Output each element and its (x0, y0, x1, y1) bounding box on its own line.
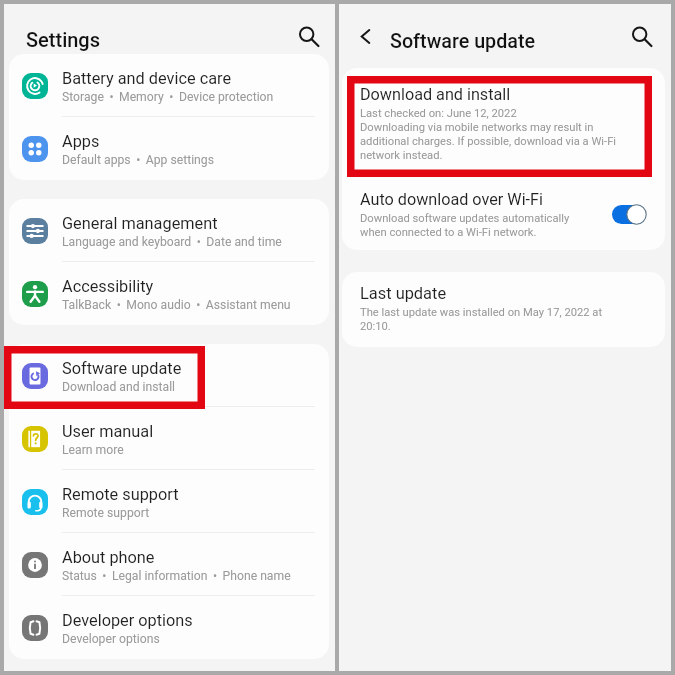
staticText: Language and keyboard • Date and time (62, 233, 282, 250)
button[interactable]: Last update (342, 272, 665, 347)
staticText: About phone (62, 549, 155, 567)
button[interactable]: Software update (9, 344, 329, 407)
staticText: Remote support (62, 486, 179, 504)
staticText: Accessibility (62, 278, 154, 296)
button[interactable]: Auto download over Wi-Fi (612, 205, 645, 224)
staticText: Software update (62, 360, 182, 378)
button[interactable]: Developer options (9, 596, 329, 659)
staticText: Apps (62, 133, 100, 151)
button[interactable]: About phone (9, 533, 329, 596)
staticText: The last update was installed on May 17,… (360, 305, 603, 333)
staticText: Storage • Memory • Device protection (62, 88, 274, 105)
staticText: TalkBack • Mono audio • Assistant menu (62, 296, 291, 313)
button[interactable]: Download and install (342, 68, 665, 168)
staticText: Developer options (62, 630, 160, 647)
staticText: Settings (26, 28, 101, 52)
button[interactable]: Accessibility (9, 262, 329, 325)
staticText: Auto download over Wi-Fi (360, 190, 543, 209)
staticText: Last checked on: June 12, 2022 (360, 106, 517, 120)
button[interactable]: User manual (9, 407, 329, 470)
button[interactable]: Search (293, 21, 323, 51)
staticText: Software update (390, 29, 536, 53)
staticText: Download and install (62, 378, 176, 395)
staticText: Default apps • App settings (62, 151, 214, 168)
staticText: Developer options (62, 612, 193, 630)
staticText: Downloading via mobile networks may resu… (360, 120, 617, 162)
staticText: Download and install (360, 85, 511, 104)
button[interactable]: Apps (9, 117, 329, 180)
button[interactable]: Remote support (9, 470, 329, 533)
staticText: Last update (360, 284, 447, 303)
staticText: Battery and device care (62, 70, 232, 88)
button[interactable]: Auto download over Wi-Fi (342, 168, 665, 250)
button[interactable]: Battery and device care (9, 54, 329, 117)
staticText: General management (62, 215, 218, 233)
staticText: User manual (62, 423, 154, 441)
staticText: Status • Legal information • Phone name (62, 567, 291, 584)
staticText: Learn more (62, 441, 124, 458)
staticText: Download software updates automatically … (360, 211, 570, 239)
button[interactable]: Back (351, 22, 379, 50)
button[interactable]: Search (626, 21, 656, 51)
staticText: Remote support (62, 504, 150, 521)
button[interactable]: General management (9, 199, 329, 262)
